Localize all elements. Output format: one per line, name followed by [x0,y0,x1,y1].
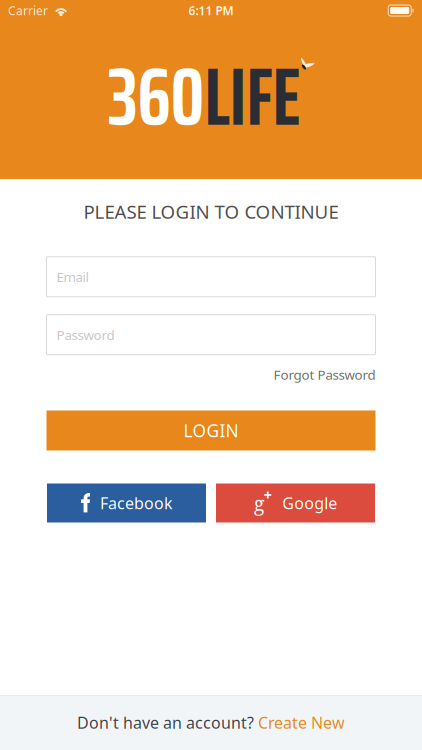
staticText: Create New [258,712,345,733]
staticText: 6:11 PM [188,2,233,18]
button[interactable]: Don't have an account? [0,695,422,750]
staticText: PLEASE LOGIN TO CONTINUE [83,199,338,224]
staticText: Google [282,492,337,514]
button[interactable]: g [216,483,375,522]
staticText: Facebook [100,492,173,514]
staticText: LOGIN [183,419,238,442]
staticText: LIFE [204,34,300,160]
staticText: Email [56,268,88,286]
staticText: Forgot Password [273,366,375,383]
staticText: 360 [107,34,204,160]
button[interactable]: Forgot Password [273,366,375,383]
staticText: Password [56,326,114,344]
staticText: g [254,489,265,517]
button[interactable]: Facebook [47,483,206,522]
staticText: Carrier [8,2,48,18]
button[interactable]: LOGIN [46,410,375,450]
staticText: Don't have an account? [77,712,258,733]
